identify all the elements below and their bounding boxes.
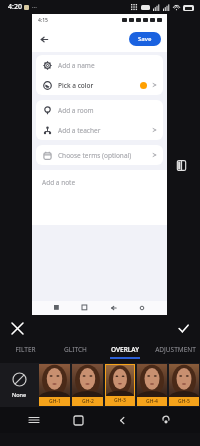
button[interactable]: Back [112, 410, 132, 430]
staticText: Add a note [42, 178, 76, 187]
button[interactable]: None [0, 363, 38, 407]
button[interactable]: Back [36, 31, 52, 47]
staticText: Add a room [58, 106, 94, 115]
button[interactable]: ADJUSTMENT [150, 341, 200, 363]
staticText: Add a teacher [58, 126, 101, 135]
staticText: Pick a color [58, 81, 94, 90]
button[interactable]: GH-5 [169, 364, 199, 406]
staticText: GH-1 [49, 398, 61, 405]
button[interactable]: FILTER [0, 341, 50, 363]
button[interactable]: OVERLAY [100, 341, 150, 363]
button[interactable]: GH-3 [106, 365, 134, 405]
staticText: GH-5 [178, 398, 190, 405]
button[interactable]: Split screen [170, 154, 192, 176]
button[interactable]: Save [129, 32, 161, 46]
button[interactable]: GLITCH [50, 341, 100, 363]
staticText: OVERLAY [111, 345, 139, 354]
button[interactable]: Screenshot [156, 410, 176, 430]
staticText: GLITCH [64, 345, 87, 354]
button[interactable]: GH-2 [72, 364, 103, 406]
button[interactable]: GH-1 [39, 364, 70, 406]
button[interactable]: Home [68, 410, 88, 430]
staticText: Save [138, 35, 152, 43]
button[interactable]: Cancel [8, 319, 26, 337]
staticText: Choose terms (optional) [58, 151, 132, 160]
button[interactable]: Menu [24, 410, 44, 430]
button[interactable]: Confirm [174, 319, 192, 337]
button[interactable]: GH-4 [137, 364, 167, 406]
button[interactable]: Add a room [36, 100, 163, 120]
staticText: 4:20 [8, 2, 22, 12]
button[interactable]: Add a name [36, 55, 163, 75]
staticText: ··· [32, 3, 37, 11]
staticText: GH-2 [82, 398, 94, 405]
button[interactable]: Pick a color [36, 75, 163, 95]
staticText: None [12, 391, 27, 398]
button[interactable]: Choose terms (optional) [36, 145, 163, 165]
staticText: GH-4 [146, 398, 158, 405]
staticText: FILTER [15, 345, 36, 354]
staticText: 4:15 [38, 17, 48, 24]
button[interactable]: Add a teacher [36, 120, 163, 140]
staticText: GH-3 [114, 397, 126, 404]
staticText: Add a name [58, 61, 95, 70]
staticText: ADJUSTMENT [155, 345, 196, 354]
